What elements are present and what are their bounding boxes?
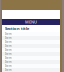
staticText: MENU [25, 19, 37, 25]
button[interactable]: Item [2, 40, 60, 44]
button[interactable]: Item [2, 36, 60, 40]
button[interactable]: Item [2, 60, 60, 64]
staticText: Item [5, 68, 11, 72]
button[interactable]: Item [2, 56, 60, 60]
button[interactable]: Item [2, 64, 60, 68]
staticText: Item [5, 36, 11, 40]
staticText: Section title [5, 26, 29, 31]
button[interactable]: Item [2, 68, 60, 72]
button[interactable]: Item [2, 32, 60, 36]
button[interactable]: MENU [2, 19, 60, 25]
staticText: Item [5, 48, 11, 52]
staticText: Item [5, 52, 11, 56]
staticText: Item [5, 32, 11, 36]
staticText: Item [5, 56, 11, 60]
staticText: Item [5, 44, 11, 48]
button[interactable]: Item [2, 48, 60, 52]
staticText: Item [5, 40, 11, 44]
staticText: Item [5, 64, 11, 68]
staticText: Item [5, 60, 11, 64]
button[interactable]: Item [2, 44, 60, 48]
button[interactable]: Item [2, 52, 60, 56]
